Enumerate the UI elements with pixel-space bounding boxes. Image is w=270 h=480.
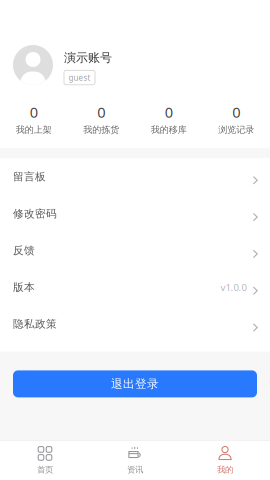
- staticText: 修改密码: [13, 207, 57, 220]
- button[interactable]: 资讯: [90, 441, 180, 480]
- staticText: 首页: [37, 464, 53, 475]
- staticText: 我的拣货: [83, 124, 119, 135]
- button[interactable]: 0: [67, 102, 135, 135]
- staticText: 资讯: [127, 464, 143, 475]
- button[interactable]: 修改密码: [0, 195, 270, 232]
- button[interactable]: 留言板: [0, 158, 270, 195]
- button[interactable]: 退出登录: [13, 370, 257, 397]
- staticText: 我的上架: [16, 124, 52, 135]
- button[interactable]: 反馈: [0, 232, 270, 269]
- staticText: 我的: [217, 464, 233, 475]
- staticText: 版本: [13, 280, 35, 294]
- staticText: 演示账号: [64, 50, 112, 65]
- button[interactable]: 0: [202, 102, 270, 135]
- staticText: 0: [97, 102, 105, 122]
- button[interactable]: 0: [135, 102, 202, 135]
- staticText: 隐私政策: [13, 317, 57, 331]
- staticText: guest: [68, 72, 90, 83]
- staticText: 退出登录: [111, 377, 159, 391]
- staticText: 我的移库: [151, 124, 187, 135]
- button[interactable]: 首页: [0, 441, 90, 480]
- staticText: v1.0.0: [221, 281, 247, 294]
- staticText: 0: [165, 102, 173, 122]
- staticText: 浏览记录: [218, 124, 254, 135]
- button[interactable]: 版本: [0, 269, 270, 306]
- staticText: 0: [232, 102, 240, 122]
- staticText: 0: [30, 102, 38, 122]
- staticText: 留言板: [13, 170, 46, 183]
- button[interactable]: 隐私政策: [0, 306, 270, 342]
- staticText: 反馈: [13, 244, 35, 257]
- button[interactable]: 我的: [180, 441, 270, 480]
- button[interactable]: 0: [0, 102, 67, 135]
